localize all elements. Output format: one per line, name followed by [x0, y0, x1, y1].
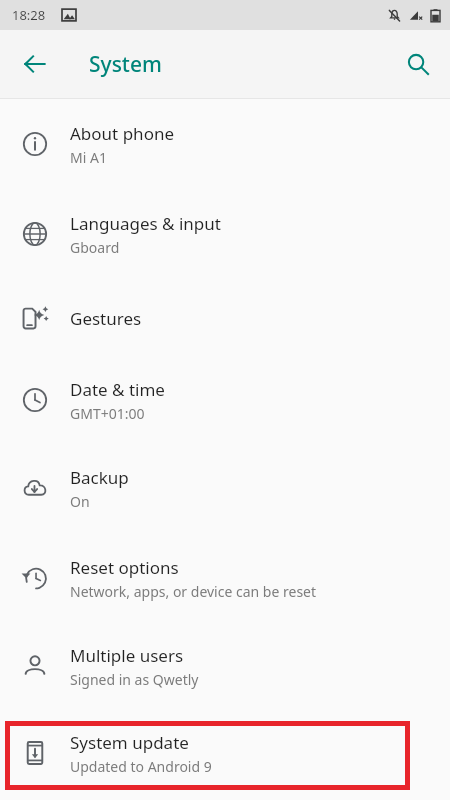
staticText: System [89, 50, 162, 79]
staticText: Gestures [70, 307, 142, 330]
staticText: Network, apps, or device can be reset [70, 582, 317, 601]
button[interactable]: Multiple users [0, 623, 450, 709]
button[interactable]: Back [11, 40, 59, 88]
button[interactable]: System update [0, 709, 450, 797]
button[interactable]: Languages & input [0, 189, 450, 279]
staticText: On [70, 492, 90, 511]
staticText: GMT+01:00 [70, 404, 145, 423]
button[interactable]: About phone [0, 99, 450, 189]
staticText: About phone [70, 122, 175, 145]
staticText: Date & time [70, 378, 165, 401]
button[interactable]: Gestures [0, 279, 450, 357]
staticText: System update [70, 731, 189, 754]
button[interactable]: Date & time [0, 357, 450, 443]
staticText: Gboard [70, 238, 120, 257]
staticText: 18:28 [12, 6, 46, 24]
button[interactable]: Backup [0, 443, 450, 533]
staticText: Multiple users [70, 644, 184, 667]
staticText: Updated to Android 9 [70, 757, 212, 776]
button[interactable]: Reset options [0, 533, 450, 623]
staticText: Languages & input [70, 212, 221, 235]
staticText: Backup [70, 466, 129, 489]
staticText: Mi A1 [70, 148, 107, 167]
staticText: Reset options [70, 556, 179, 579]
button[interactable]: Search [394, 40, 442, 88]
staticText: Signed in as Qwetly [70, 670, 199, 689]
